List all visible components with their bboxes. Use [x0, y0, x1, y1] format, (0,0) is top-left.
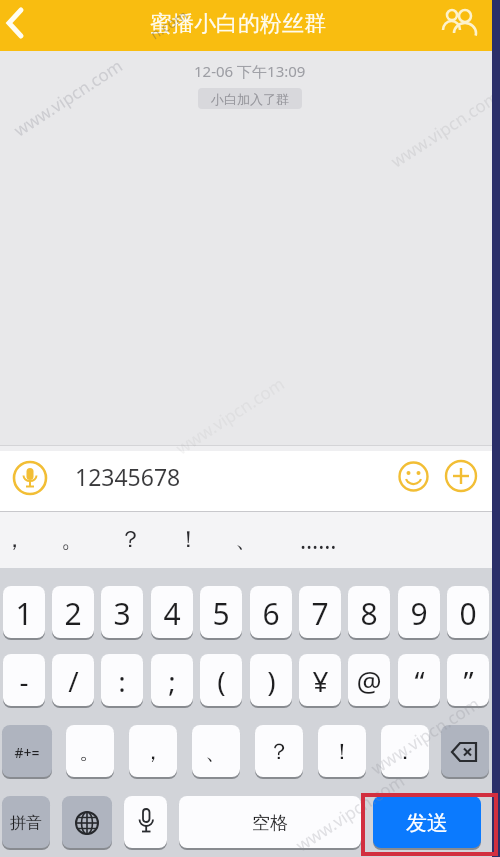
- staticText: www.vipcn.com: [386, 84, 500, 172]
- staticText: 蜜播小白的粉丝群: [150, 10, 326, 38]
- button[interactable]: 1: [3, 586, 45, 640]
- button[interactable]: 发送: [373, 796, 481, 850]
- staticText: 拼音: [10, 813, 42, 833]
- staticText: www.vipcn.com: [366, 691, 484, 779]
- button[interactable]: [124, 796, 167, 850]
- button[interactable]: [0, 0, 40, 51]
- staticText: :: [118, 662, 126, 700]
- button[interactable]: ，: [0, 511, 40, 568]
- button[interactable]: :: [101, 654, 143, 708]
- button[interactable]: ？: [104, 511, 156, 568]
- button[interactable]: ¥: [299, 654, 341, 708]
- button[interactable]: ……: [292, 511, 344, 568]
- staticText: 8: [360, 593, 378, 634]
- staticText: ¥: [312, 662, 329, 700]
- staticText: 0: [459, 593, 477, 634]
- staticText: 9: [410, 593, 428, 634]
- staticText: 2: [64, 593, 82, 634]
- staticText: 、: [205, 738, 227, 766]
- button[interactable]: 8: [348, 586, 390, 640]
- button[interactable]: 7: [299, 586, 341, 640]
- staticText: /: [68, 662, 79, 700]
- staticText: n.com: [146, 5, 191, 43]
- button[interactable]: ！: [318, 725, 366, 779]
- staticText: 小白加入了群: [211, 91, 289, 107]
- button[interactable]: ): [250, 654, 292, 708]
- staticText: @: [356, 662, 382, 700]
- button[interactable]: 、: [220, 511, 272, 568]
- button[interactable]: [62, 796, 112, 850]
- staticText: ”: [463, 662, 474, 700]
- staticText: 6: [262, 593, 280, 634]
- staticText: 5: [212, 593, 230, 634]
- button[interactable]: [12, 460, 48, 496]
- button[interactable]: 空格: [179, 796, 361, 850]
- button[interactable]: 6: [250, 586, 292, 640]
- button[interactable]: 3: [101, 586, 143, 640]
- staticText: 1: [15, 593, 33, 634]
- staticText: 空格: [252, 812, 288, 835]
- staticText: ……: [300, 524, 337, 555]
- staticText: 、: [235, 525, 258, 554]
- staticText: ！: [331, 738, 353, 766]
- button[interactable]: #+=: [2, 725, 52, 779]
- button[interactable]: 0: [447, 586, 489, 640]
- staticText: ): [267, 662, 276, 700]
- staticText: ，: [142, 738, 164, 766]
- button[interactable]: ;: [151, 654, 193, 708]
- staticText: 。: [61, 525, 84, 554]
- button[interactable]: 拼音: [2, 796, 50, 850]
- button[interactable]: [441, 725, 489, 779]
- button[interactable]: [398, 461, 429, 492]
- button[interactable]: ？: [255, 725, 303, 779]
- button[interactable]: /: [52, 654, 94, 708]
- button[interactable]: ！: [162, 511, 214, 568]
- staticText: 。: [79, 738, 101, 766]
- staticText: ;: [168, 662, 176, 700]
- button[interactable]: -: [3, 654, 45, 708]
- button[interactable]: 。: [66, 725, 114, 779]
- staticText: www.vipcn.com: [291, 768, 409, 856]
- button[interactable]: ”: [447, 654, 489, 708]
- button[interactable]: ．: [381, 725, 429, 779]
- staticText: 3: [113, 593, 131, 634]
- button[interactable]: 2: [52, 586, 94, 640]
- button[interactable]: [444, 459, 478, 493]
- staticText: www.vipcn.com: [171, 371, 289, 459]
- staticText: 12345678: [75, 461, 181, 492]
- staticText: ．: [394, 738, 416, 766]
- button[interactable]: 5: [200, 586, 242, 640]
- staticText: ？: [119, 525, 142, 554]
- button[interactable]: (: [200, 654, 242, 708]
- staticText: -: [19, 662, 29, 700]
- button[interactable]: @: [348, 654, 390, 708]
- staticText: 4: [163, 593, 181, 634]
- button[interactable]: ，: [129, 725, 177, 779]
- staticText: “: [414, 662, 425, 700]
- staticText: 发送: [406, 810, 448, 836]
- button[interactable]: [440, 0, 482, 51]
- staticText: #+=: [14, 743, 40, 762]
- staticText: ！: [177, 525, 200, 554]
- button[interactable]: 、: [192, 725, 240, 779]
- staticText: ？: [268, 738, 290, 766]
- button[interactable]: “: [398, 654, 440, 708]
- staticText: 12-06 下午13:09: [194, 61, 306, 81]
- staticText: www.vipcn.com: [9, 53, 127, 141]
- staticText: 7: [311, 593, 329, 634]
- button[interactable]: 4: [151, 586, 193, 640]
- button[interactable]: 9: [398, 586, 440, 640]
- button[interactable]: 。: [46, 511, 98, 568]
- staticText: ，: [3, 525, 26, 554]
- staticText: (: [217, 662, 226, 700]
